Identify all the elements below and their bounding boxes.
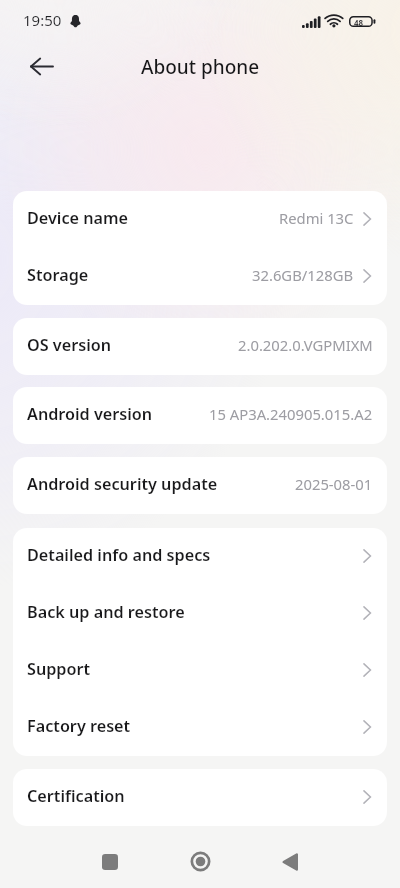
button[interactable]: Back	[266, 838, 314, 886]
staticText: About phone	[141, 54, 260, 80]
button[interactable]: Detailed info and specs	[13, 528, 387, 585]
staticText: 48	[354, 17, 364, 28]
button[interactable]: Android security update	[13, 457, 387, 514]
staticText: Storage	[27, 264, 89, 286]
staticText: Android version	[27, 403, 153, 425]
staticText: Detailed info and specs	[27, 544, 211, 566]
staticText: 2025-08-01	[295, 474, 373, 494]
button[interactable]: Android version	[13, 387, 387, 444]
button[interactable]: Certification	[13, 769, 387, 826]
button[interactable]: Home	[176, 837, 224, 885]
staticText: Certification	[27, 785, 125, 807]
staticText: 19:50	[23, 10, 62, 30]
staticText: Support	[27, 658, 91, 680]
staticText: 2.0.202.0.VGPMIXM	[238, 335, 373, 355]
staticText: Android security update	[27, 473, 218, 495]
staticText: Device name	[27, 207, 129, 229]
staticText: Factory reset	[27, 715, 131, 737]
staticText: Redmi 13C	[279, 208, 354, 228]
button[interactable]: Back up and restore	[13, 585, 387, 642]
staticText: OS version	[27, 334, 112, 356]
button[interactable]: OS version	[13, 318, 387, 375]
button[interactable]: Back	[19, 43, 65, 89]
button[interactable]: Support	[13, 642, 387, 699]
button[interactable]: Storage	[13, 248, 387, 305]
staticText: 15 AP3A.240905.015.A2	[209, 404, 373, 424]
button[interactable]: Recent apps	[86, 838, 134, 886]
button[interactable]: Factory reset	[13, 699, 387, 756]
staticText: 32.6GB/128GB	[252, 265, 354, 285]
staticText: Back up and restore	[27, 601, 185, 623]
button[interactable]: Device name	[13, 191, 387, 248]
